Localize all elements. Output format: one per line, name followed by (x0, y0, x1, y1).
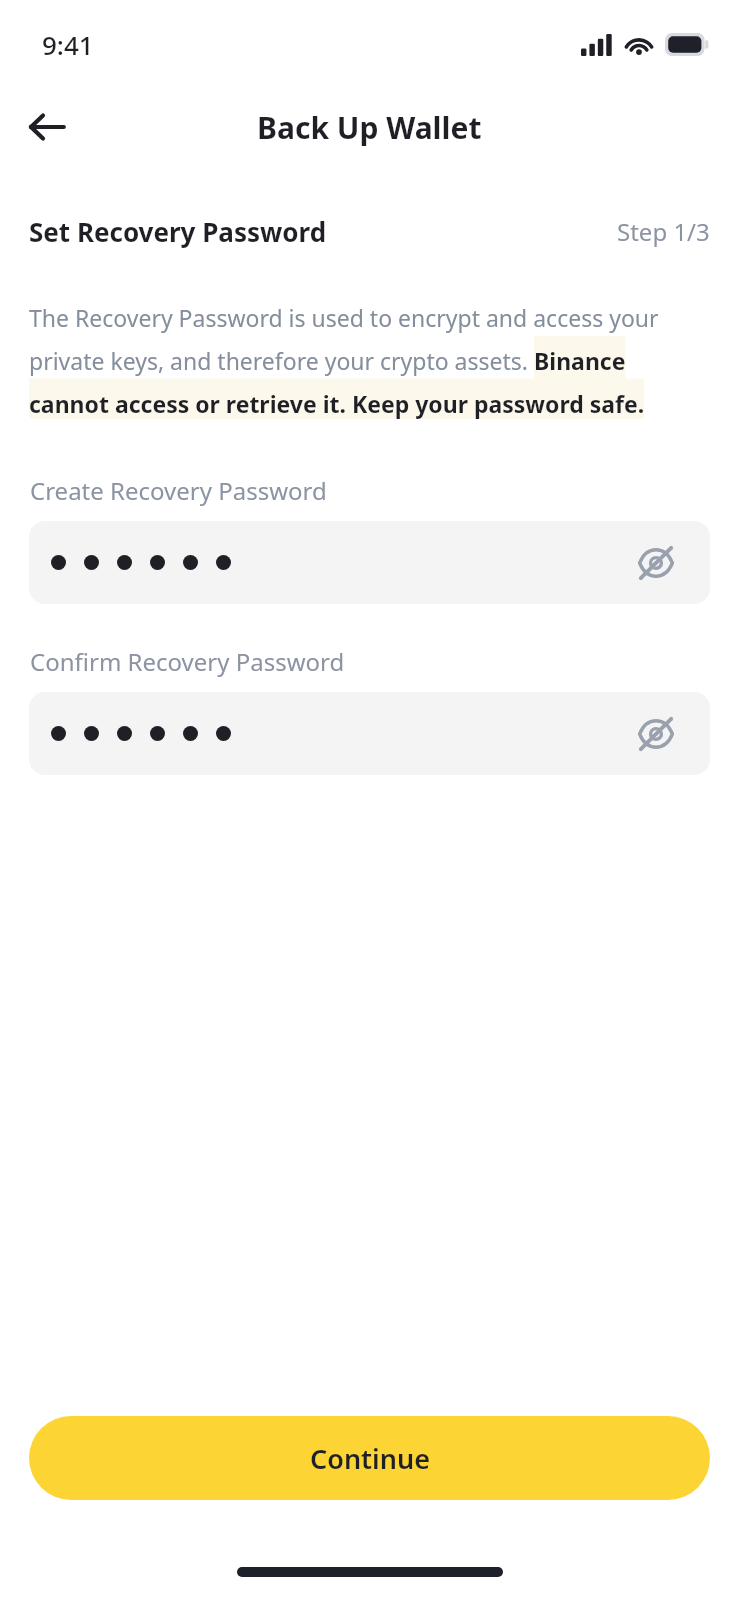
button[interactable]: Show password (630, 708, 682, 760)
staticText: Step 1/3 (617, 215, 710, 248)
staticText: 9:41 (42, 27, 94, 62)
staticText: Create Recovery Password (30, 474, 709, 507)
staticText: The Recovery Password is used to encrypt… (29, 302, 710, 419)
staticText: Continue (310, 1440, 430, 1477)
button[interactable]: Back (18, 98, 76, 156)
staticText: Set Recovery Password (29, 214, 327, 249)
button[interactable]: Show password (630, 537, 682, 589)
button[interactable]: Show password (29, 521, 710, 604)
button[interactable]: Continue (29, 1416, 710, 1500)
staticText: Confirm Recovery Password (30, 645, 709, 678)
staticText: Back Up Wallet (257, 107, 482, 148)
button[interactable]: Show password (29, 692, 710, 775)
